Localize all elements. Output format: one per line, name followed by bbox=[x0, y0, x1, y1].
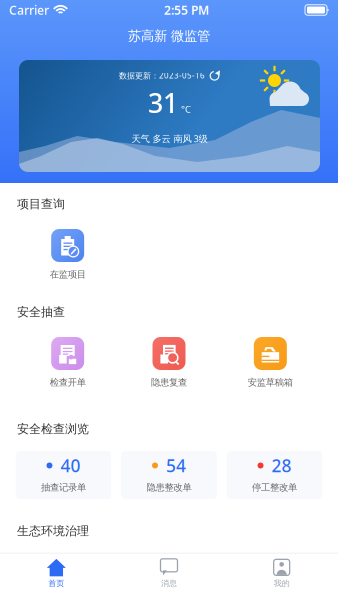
staticText: 停工整改单 bbox=[252, 482, 297, 493]
button[interactable]: 检查开单 bbox=[17, 337, 118, 389]
staticText: 28 bbox=[271, 454, 291, 477]
staticText: Carrier bbox=[9, 2, 49, 18]
button[interactable]: 在监项目 bbox=[17, 229, 118, 281]
staticText: 检查开单 bbox=[50, 377, 86, 388]
staticText: 我的 bbox=[274, 578, 290, 588]
staticText: 安监草稿箱 bbox=[248, 377, 293, 388]
staticText: 隐患复查 bbox=[151, 377, 187, 388]
staticText: 隐患整改单 bbox=[146, 482, 191, 493]
button[interactable]: 我的 bbox=[225, 553, 338, 592]
staticText: 54 bbox=[166, 454, 186, 477]
staticText: 首页 bbox=[48, 578, 64, 588]
staticText: 消息 bbox=[161, 578, 177, 588]
staticText: 31 bbox=[148, 85, 178, 120]
staticText: 苏高新 微监管 bbox=[128, 28, 210, 44]
staticText: 安全抽查 bbox=[17, 305, 65, 319]
staticText: °C bbox=[181, 103, 191, 115]
button[interactable]: 28 bbox=[227, 451, 322, 499]
staticText: 数据更新：2023-05-16 bbox=[119, 70, 205, 81]
staticText: 在监项目 bbox=[50, 269, 86, 280]
staticText: 40 bbox=[60, 454, 80, 477]
staticText: 抽查记录单 bbox=[41, 482, 86, 493]
staticText: 项目查询 bbox=[17, 197, 65, 211]
button[interactable]: 消息 bbox=[113, 553, 225, 592]
staticText: 天气 多云 南风 3级 bbox=[131, 132, 207, 145]
button[interactable]: 54 bbox=[121, 451, 217, 499]
staticText: 安全检查浏览 bbox=[17, 422, 89, 436]
button[interactable]: 隐患复查 bbox=[118, 337, 220, 389]
staticText: 生态环境治理 bbox=[17, 524, 89, 538]
staticText: 2:55 PM bbox=[164, 2, 209, 18]
button[interactable]: 首页 bbox=[0, 553, 113, 592]
button[interactable]: 安监草稿箱 bbox=[220, 337, 321, 389]
button[interactable]: 40 bbox=[16, 451, 111, 499]
